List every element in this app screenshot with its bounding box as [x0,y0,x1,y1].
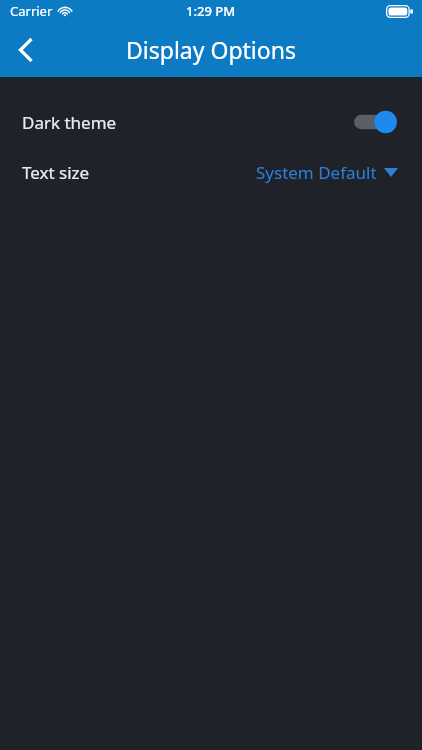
staticText: System Default [256,161,377,184]
button[interactable]: Text size [0,147,422,197]
staticText: Carrier [10,2,53,20]
staticText: Text size [22,161,90,184]
staticText: 1:29 PM [186,2,236,20]
button[interactable]: Dark theme toggle [354,110,398,134]
button[interactable]: System Default [256,161,398,184]
button[interactable]: Back [0,24,52,76]
button[interactable]: Dark theme [0,97,422,147]
staticText: Dark theme [22,111,117,134]
staticText: Display Options [126,34,296,65]
